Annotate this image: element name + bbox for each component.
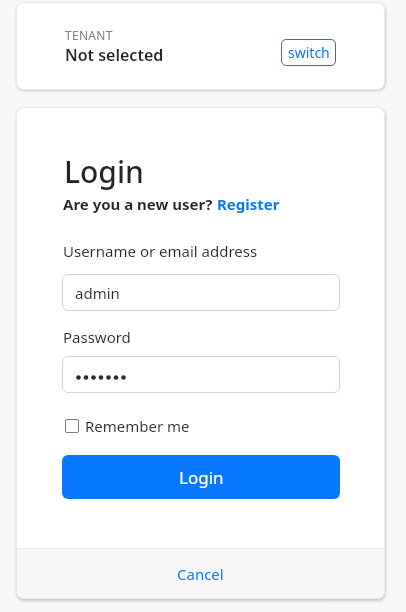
button[interactable]: Cancel xyxy=(177,564,224,584)
staticText: Cancel xyxy=(177,564,224,584)
staticText: Login xyxy=(64,151,144,192)
staticText: Not selected xyxy=(65,44,164,66)
staticText: admin xyxy=(75,283,120,303)
staticText: Remember me xyxy=(85,416,190,436)
staticText: Are you a new user? xyxy=(63,194,217,214)
staticText: Password xyxy=(63,327,131,347)
button[interactable] xyxy=(62,356,340,393)
staticText: Login xyxy=(179,466,224,489)
button[interactable]: Remember me xyxy=(65,416,190,436)
button[interactable]: switch xyxy=(281,39,336,66)
button[interactable]: Register xyxy=(217,194,280,214)
button[interactable]: admin xyxy=(62,274,340,311)
staticText: switch xyxy=(288,43,330,62)
button[interactable]: Login xyxy=(62,455,340,499)
staticText: TENANT xyxy=(65,27,113,43)
staticText: Username or email address xyxy=(63,241,258,261)
